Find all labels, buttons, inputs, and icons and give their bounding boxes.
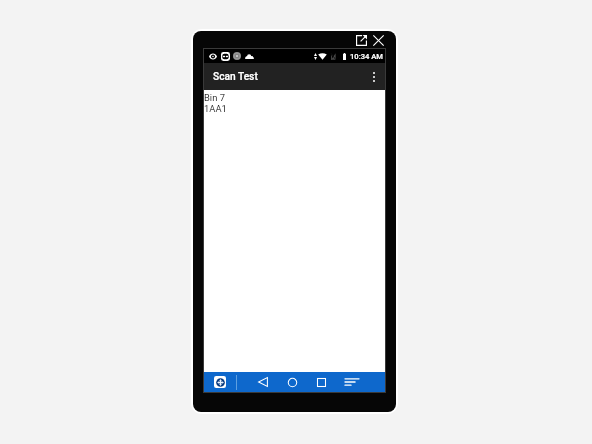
staticText: 1AA1 xyxy=(204,103,227,114)
button[interactable]: Open in new window xyxy=(354,33,369,48)
button[interactable]: 1AA1 xyxy=(204,103,385,114)
button[interactable]: Move xyxy=(214,376,226,388)
button[interactable]: Menu xyxy=(341,372,363,392)
button[interactable]: Close xyxy=(371,33,386,48)
button[interactable]: Home xyxy=(281,372,303,392)
button[interactable]: More options xyxy=(363,63,385,90)
staticText: Scan Test xyxy=(213,71,258,83)
button[interactable]: Recent apps xyxy=(310,372,332,392)
button[interactable]: Back xyxy=(252,372,274,392)
button[interactable]: Bin 7 xyxy=(204,92,385,103)
staticText: Bin 7 xyxy=(204,92,225,103)
staticText: 10:34 AM xyxy=(350,52,383,61)
